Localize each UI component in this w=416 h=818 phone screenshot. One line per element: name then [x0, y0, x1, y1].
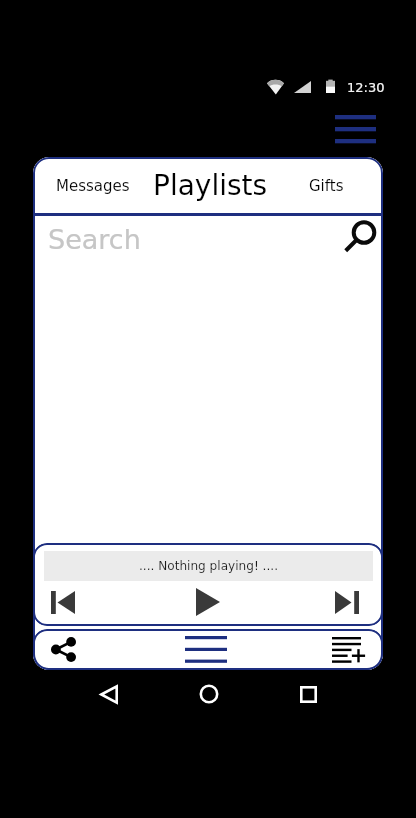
button[interactable]: Next track: [266, 584, 383, 620]
button[interactable]: Playlists: [149, 629, 266, 670]
staticText: Playlists: [153, 169, 268, 202]
button[interactable]: Search: [33, 216, 383, 266]
button[interactable]: Playlists: [147, 167, 274, 204]
button[interactable]: Share: [33, 629, 149, 670]
button[interactable]: Play: [149, 584, 266, 620]
staticText: .... Nothing playing! ....: [139, 559, 278, 573]
staticText: Messages: [56, 177, 130, 194]
button[interactable]: Messages: [46, 168, 140, 203]
button[interactable]: Add to playlist: [266, 629, 383, 670]
button[interactable]: Recent apps: [268, 674, 349, 714]
staticText: Gifts: [309, 177, 344, 194]
button[interactable]: Back: [68, 674, 149, 714]
button[interactable]: Open navigation drawer: [327, 108, 383, 150]
button[interactable]: Gifts: [299, 168, 354, 203]
button[interactable]: Previous track: [33, 584, 149, 620]
button[interactable]: Search: [339, 220, 379, 260]
button[interactable]: Home: [168, 674, 249, 714]
staticText: Search: [48, 224, 141, 255]
staticText: 12:30: [347, 80, 385, 95]
